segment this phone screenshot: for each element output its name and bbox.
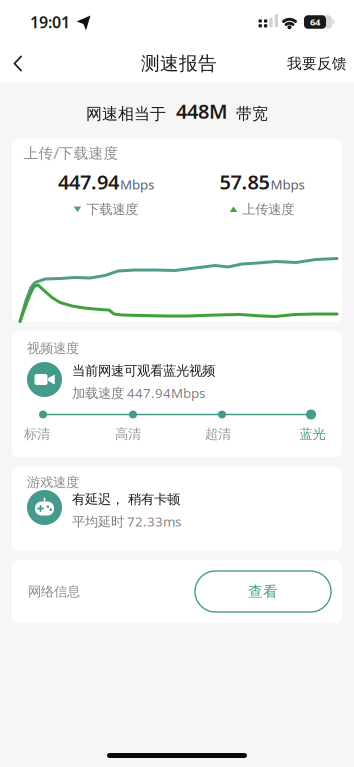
button[interactable]: 查看 [195,571,331,612]
button[interactable]: 我要反馈 [287,54,347,72]
staticText: 19:01 [30,11,70,33]
staticText: 标清 [24,426,50,442]
staticText: 超清 [205,426,231,442]
staticText: 447.94 [58,168,119,195]
staticText: 57.85 [219,168,269,195]
staticText: 上传速度 [242,201,294,217]
staticText: 游戏速度 [27,474,79,490]
staticText: 有延迟， 稍有卡顿 [72,491,180,507]
button[interactable]: Back [13,53,27,74]
staticText: 64 [310,16,320,28]
staticText: Mbps [270,175,304,193]
staticText: 视频速度 [27,340,79,356]
staticText: 上传/下载速度 [23,143,118,162]
staticText: 加载速度 447.94Mbps [72,384,205,402]
staticText: 查看 [248,582,278,600]
staticText: 下载速度 [86,201,138,217]
staticText: 平均延时 72.33ms [72,512,181,530]
staticText: 当前网速可观看蓝光视频 [72,362,215,379]
staticText: 测速报告 [141,52,217,75]
staticText: 高清 [115,426,141,442]
staticText: Mbps [120,175,154,193]
staticText: 我要反馈 [287,54,347,72]
staticText: 蓝光 [299,426,325,442]
staticText: 网速相当于 448M 带宽 [86,98,268,124]
staticText: 网络信息 [28,583,80,600]
